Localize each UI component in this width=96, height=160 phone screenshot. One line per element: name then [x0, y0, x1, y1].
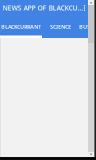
button[interactable]: BUSINESS	[79, 16, 96, 38]
staticText: NEWS APP OF BLACKCU…	[2, 3, 82, 13]
button[interactable]: More options	[82, 4, 88, 11]
button[interactable]: SCIENCE	[42, 16, 79, 38]
staticText: BUSINESS	[79, 23, 96, 30]
staticText: BLACKCURRANT	[1, 23, 41, 30]
staticText: SCIENCE	[50, 23, 71, 30]
button[interactable]: Scroll up	[88, 0, 94, 5]
button[interactable]: BLACKCURRANT	[0, 16, 42, 38]
button[interactable]: Scroll down	[88, 152, 94, 157]
